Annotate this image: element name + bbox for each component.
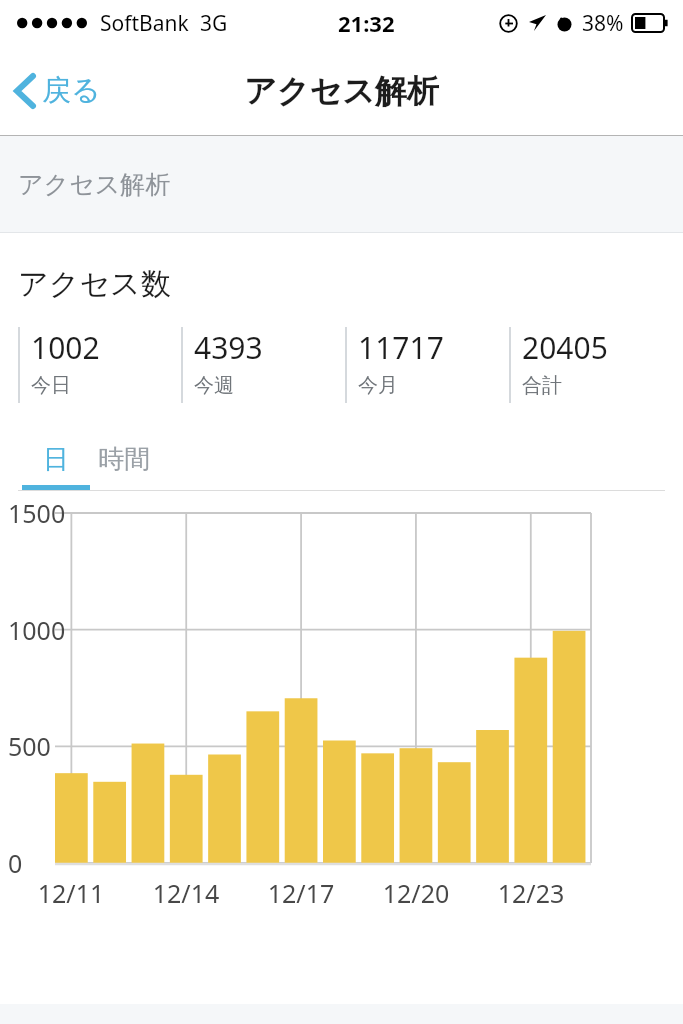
staticText: 0 xyxy=(8,846,23,880)
staticText: 12/20 xyxy=(376,876,456,910)
staticText: 時間 xyxy=(98,443,150,476)
staticText: 21:32 xyxy=(338,8,395,38)
staticText: アクセス解析 xyxy=(244,71,439,111)
staticText: SoftBank xyxy=(100,9,189,38)
button[interactable]: 20405 xyxy=(509,327,673,403)
staticText: 12/14 xyxy=(146,876,226,910)
staticText: 1002 xyxy=(31,327,100,368)
staticText: 12/17 xyxy=(261,876,341,910)
staticText: 12/23 xyxy=(491,876,571,910)
button[interactable]: 4393 xyxy=(181,327,345,403)
button[interactable]: 戻る xyxy=(0,62,117,119)
staticText: 20405 xyxy=(522,327,608,368)
staticText: 500 xyxy=(8,729,51,763)
staticText: 合計 xyxy=(522,373,562,398)
staticText: 1500 xyxy=(8,496,66,530)
staticText: 戻る xyxy=(42,72,101,109)
staticText: 1000 xyxy=(8,613,66,647)
staticText: 今日 xyxy=(31,373,71,398)
staticText: 今月 xyxy=(358,373,398,398)
staticText: 4393 xyxy=(194,327,263,368)
staticText: アクセス解析 xyxy=(18,169,171,200)
staticText: 今週 xyxy=(194,373,234,398)
button[interactable]: 時間 xyxy=(90,433,158,490)
button[interactable]: 日 xyxy=(22,433,90,490)
staticText: 3G xyxy=(200,9,228,38)
button[interactable]: 11717 xyxy=(345,327,509,403)
staticText: 11717 xyxy=(358,327,444,368)
staticText: 38% xyxy=(582,9,624,38)
button[interactable]: 1002 xyxy=(18,327,181,403)
staticText: アクセス数 xyxy=(18,265,171,303)
staticText: 12/11 xyxy=(31,876,111,910)
staticText: 日 xyxy=(43,443,69,476)
